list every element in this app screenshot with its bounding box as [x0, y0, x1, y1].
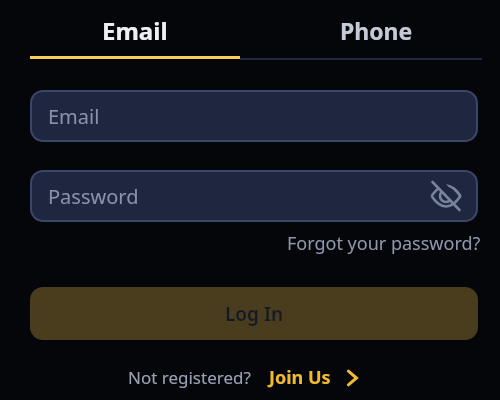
staticText: Forgot your password?	[287, 231, 481, 256]
staticText: Email	[102, 14, 168, 47]
button[interactable]: Forgot your password?	[287, 231, 481, 256]
button[interactable]: Email	[30, 90, 478, 142]
button[interactable]: Phone	[271, 8, 481, 52]
staticText: Phone	[340, 15, 413, 46]
staticText: Log In	[225, 301, 284, 327]
button[interactable]: Email	[30, 8, 240, 52]
button[interactable]: Log In	[30, 287, 478, 340]
staticText: Password	[48, 183, 139, 210]
button[interactable]	[428, 178, 464, 214]
button[interactable]: Not registered?	[128, 365, 361, 390]
button[interactable]: Password	[30, 170, 478, 222]
staticText: Join Us	[269, 365, 331, 390]
staticText: Not registered?	[128, 366, 251, 389]
staticText: Email	[48, 103, 100, 130]
